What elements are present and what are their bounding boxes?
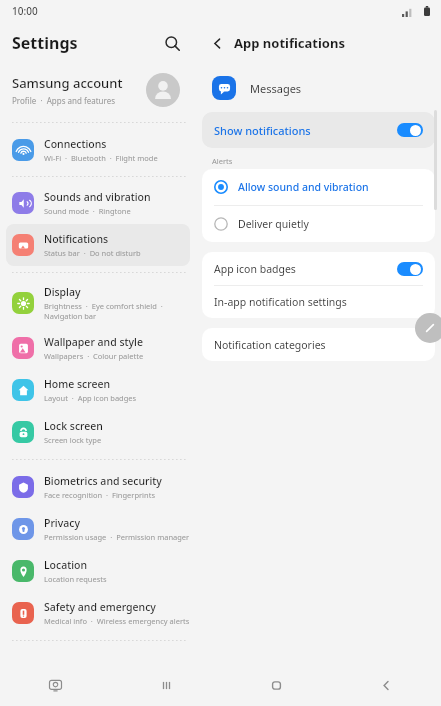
staticText: Biometrics and security xyxy=(44,474,162,488)
staticText: App icon badges xyxy=(214,262,397,276)
staticText: Navigation bar xyxy=(44,311,97,321)
staticText: Settings xyxy=(12,32,78,54)
button[interactable]: Toggle on xyxy=(397,123,423,137)
staticText: Allow sound and vibration xyxy=(238,180,369,194)
staticText: Notification categories xyxy=(214,338,326,352)
staticText: Alerts xyxy=(212,156,233,166)
staticText: Samsung account xyxy=(12,74,123,92)
button[interactable]: Home screen xyxy=(0,369,196,411)
staticText: Connections xyxy=(44,137,107,151)
staticText: Face recognition · Fingerprints xyxy=(44,490,155,500)
staticText: Safety and emergency xyxy=(44,600,156,614)
button[interactable]: Allow sound and vibration xyxy=(202,169,435,205)
staticText: Wi-Fi · Bluetooth · Flight mode xyxy=(44,153,158,163)
button[interactable]: Back xyxy=(204,30,230,56)
button[interactable]: Safety and emergency xyxy=(0,592,196,634)
staticText: Notifications xyxy=(44,232,109,246)
button[interactable]: Wallpaper and style xyxy=(0,327,196,369)
staticText: Home screen xyxy=(44,377,111,391)
staticText: Layout · App icon badges xyxy=(44,393,137,403)
button[interactable]: Edit xyxy=(415,313,441,343)
staticText: Lock screen xyxy=(44,419,103,433)
button[interactable]: Notifications xyxy=(6,224,190,266)
button[interactable]: Connections xyxy=(0,129,196,171)
button[interactable]: Search xyxy=(156,27,188,59)
staticText: 10:00 xyxy=(12,4,38,18)
staticText: Sounds and vibration xyxy=(44,190,151,204)
button[interactable]: Home xyxy=(221,664,331,706)
button[interactable]: App icon badges xyxy=(202,252,435,285)
staticText: Messages xyxy=(250,81,302,96)
staticText: App notifications xyxy=(234,34,345,52)
button[interactable]: Back xyxy=(331,664,441,706)
staticText: Sound mode · Ringtone xyxy=(44,206,131,216)
staticText: Location requests xyxy=(44,574,107,584)
staticText: In-app notification settings xyxy=(214,295,347,309)
staticText: Location xyxy=(44,558,88,572)
staticText: Medical info · Wireless emergency alerts xyxy=(44,616,190,626)
staticText: Wallpaper and style xyxy=(44,335,143,349)
button[interactable]: Privacy xyxy=(0,508,196,550)
button[interactable]: Samsung account xyxy=(0,64,196,116)
staticText: Privacy xyxy=(44,516,80,530)
button[interactable]: Notification categories xyxy=(202,328,435,361)
staticText: Screen lock type xyxy=(44,435,102,445)
button[interactable]: In-app notification settings xyxy=(202,286,435,318)
button[interactable]: Screenshot xyxy=(0,664,111,706)
button[interactable]: Show notifications xyxy=(202,112,435,148)
button[interactable]: Messages xyxy=(196,64,441,112)
button[interactable]: Toggle on xyxy=(397,262,423,276)
staticText: Wallpapers · Colour palette xyxy=(44,351,144,361)
button[interactable]: Biometrics and security xyxy=(0,466,196,508)
button[interactable]: Location xyxy=(0,550,196,592)
button[interactable]: Lock screen xyxy=(0,411,196,453)
button[interactable]: Deliver quietly xyxy=(202,206,435,242)
staticText: Display xyxy=(44,285,81,299)
staticText: Profile · Apps and features xyxy=(12,95,116,106)
staticText: Deliver quietly xyxy=(238,217,309,231)
staticText: Permission usage · Permission manager xyxy=(44,532,190,542)
button[interactable]: Recents xyxy=(111,664,221,706)
staticText: Show notifications xyxy=(214,123,397,138)
button[interactable]: Sounds and vibration xyxy=(0,182,196,224)
staticText: Status bar · Do not disturb xyxy=(44,248,141,258)
button[interactable]: Display xyxy=(0,279,196,327)
staticText: Brightness · Eye comfort shield · xyxy=(44,301,163,311)
